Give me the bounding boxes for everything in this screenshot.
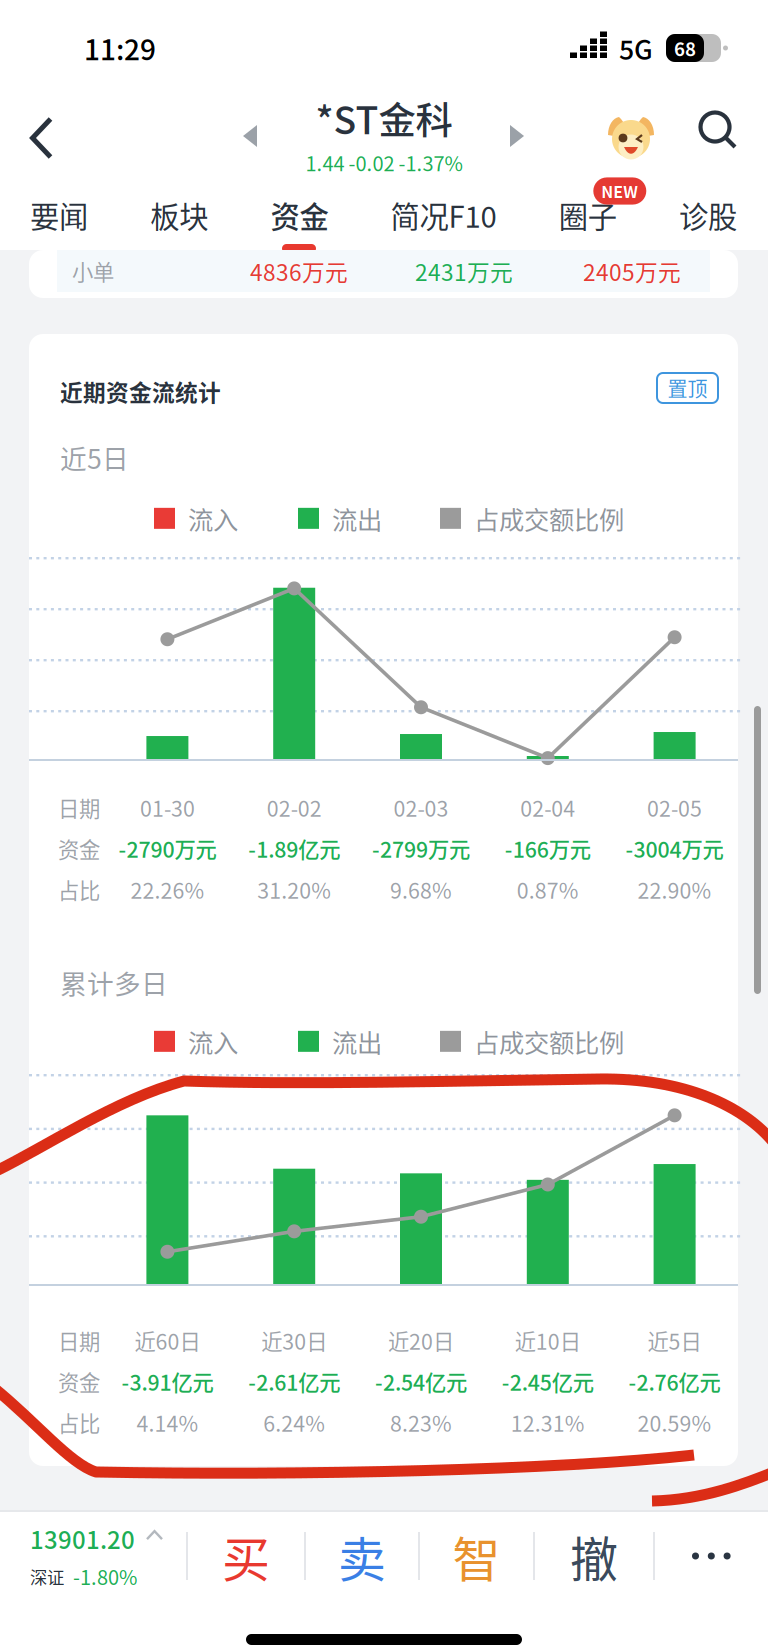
staticText: 68 xyxy=(674,34,696,61)
staticText: 资金 xyxy=(58,1366,100,1397)
staticText: 6.24% xyxy=(263,1407,325,1438)
staticText: 占比 xyxy=(58,1407,100,1438)
button[interactable]: 诊股 xyxy=(679,180,737,250)
staticText: 买 xyxy=(222,1521,270,1591)
button[interactable]: 下一只股票 xyxy=(489,105,545,167)
staticText: 占成交额比例 xyxy=(474,500,624,537)
staticText: 02-03 xyxy=(393,792,448,823)
staticText: 1.44 -0.02 -1.37% xyxy=(305,148,462,177)
staticText: -3.91亿元 xyxy=(121,1366,213,1397)
button[interactable]: 搜索 xyxy=(682,99,754,161)
button[interactable]: 返回 xyxy=(4,96,80,180)
button[interactable]: 智能助手 xyxy=(596,106,666,168)
staticText: 累计多日 xyxy=(60,963,168,1002)
staticText: 置顶 xyxy=(667,373,707,402)
staticText: 22.90% xyxy=(638,874,712,905)
staticText: 圈子 xyxy=(559,194,617,236)
staticText: 卖 xyxy=(338,1521,386,1591)
staticText: 流入 xyxy=(188,1023,238,1060)
staticText: 4836万元 xyxy=(250,255,348,287)
staticText: 13901.20 xyxy=(30,1521,135,1556)
staticText: -2.76亿元 xyxy=(629,1366,721,1397)
staticText: 8.23% xyxy=(390,1407,452,1438)
staticText: 4.14% xyxy=(136,1407,198,1438)
staticText: 2405万元 xyxy=(583,255,681,287)
staticText: 2431万元 xyxy=(415,255,513,287)
staticText: 01-30 xyxy=(140,792,195,823)
staticText: 资金 xyxy=(58,833,100,864)
button[interactable]: 置顶 xyxy=(657,373,718,403)
staticText: 小单 xyxy=(72,256,114,286)
staticText: 11:29 xyxy=(84,28,156,68)
staticText: 02-02 xyxy=(267,792,322,823)
staticText: 02-04 xyxy=(520,792,575,823)
button[interactable]: 上一只股票 xyxy=(222,105,278,167)
staticText: 诊股 xyxy=(679,194,737,236)
staticText: *ST金科 xyxy=(315,91,452,145)
staticText: -2.61亿元 xyxy=(248,1366,340,1397)
staticText: 流出 xyxy=(332,500,382,537)
staticText: 9.68% xyxy=(390,874,452,905)
button[interactable]: 简况F10 xyxy=(391,180,497,250)
staticText: 占比 xyxy=(58,874,100,905)
button[interactable]: 资金 xyxy=(270,180,328,250)
staticText: -1.80% xyxy=(73,1562,137,1591)
staticText: 02-05 xyxy=(647,792,702,823)
staticText: -166万元 xyxy=(505,833,591,864)
staticText: 近5日 xyxy=(60,438,129,477)
staticText: 近5日 xyxy=(648,1325,702,1356)
staticText: 22.26% xyxy=(130,874,204,905)
staticText: 近10日 xyxy=(515,1325,581,1356)
button[interactable]: 13901.20 xyxy=(0,1512,163,1600)
staticText: -3004万元 xyxy=(626,833,724,864)
staticText: -1.89亿元 xyxy=(248,833,340,864)
button[interactable]: 更多 xyxy=(655,1512,768,1600)
staticText: 板块 xyxy=(150,194,208,236)
staticText: -2790万元 xyxy=(118,833,216,864)
staticText: -2799万元 xyxy=(372,833,470,864)
staticText: -2.54亿元 xyxy=(375,1366,467,1397)
staticText: 要闻 xyxy=(30,194,88,236)
button[interactable]: 要闻 xyxy=(30,180,88,250)
staticText: 占成交额比例 xyxy=(474,1023,624,1060)
button[interactable]: 智 xyxy=(420,1512,533,1600)
staticText: 简况F10 xyxy=(391,194,497,236)
staticText: 0.87% xyxy=(517,874,579,905)
staticText: 20.59% xyxy=(638,1407,712,1438)
button[interactable]: 撤 xyxy=(535,1512,653,1600)
staticText: 流出 xyxy=(332,1023,382,1060)
staticText: 流入 xyxy=(188,500,238,537)
staticText: 智 xyxy=(452,1521,500,1591)
button[interactable]: 买 xyxy=(188,1512,304,1600)
button[interactable]: 圈子 xyxy=(559,180,617,250)
button[interactable]: 卖 xyxy=(306,1512,418,1600)
staticText: 深证 xyxy=(30,1564,64,1589)
staticText: 资金 xyxy=(270,194,328,236)
staticText: NEW xyxy=(601,179,638,203)
staticText: 日期 xyxy=(58,1325,100,1356)
staticText: 近30日 xyxy=(261,1325,327,1356)
staticText: 近60日 xyxy=(134,1325,200,1356)
staticText: 12.31% xyxy=(511,1407,585,1438)
staticText: 31.20% xyxy=(257,874,331,905)
staticText: 近20日 xyxy=(388,1325,454,1356)
staticText: 5G xyxy=(619,29,653,67)
staticText: 日期 xyxy=(58,792,100,823)
staticText: -2.45亿元 xyxy=(502,1366,594,1397)
staticText: 近期资金流统计 xyxy=(60,375,221,408)
staticText: 撤 xyxy=(570,1521,618,1591)
button[interactable]: 板块 xyxy=(150,180,208,250)
